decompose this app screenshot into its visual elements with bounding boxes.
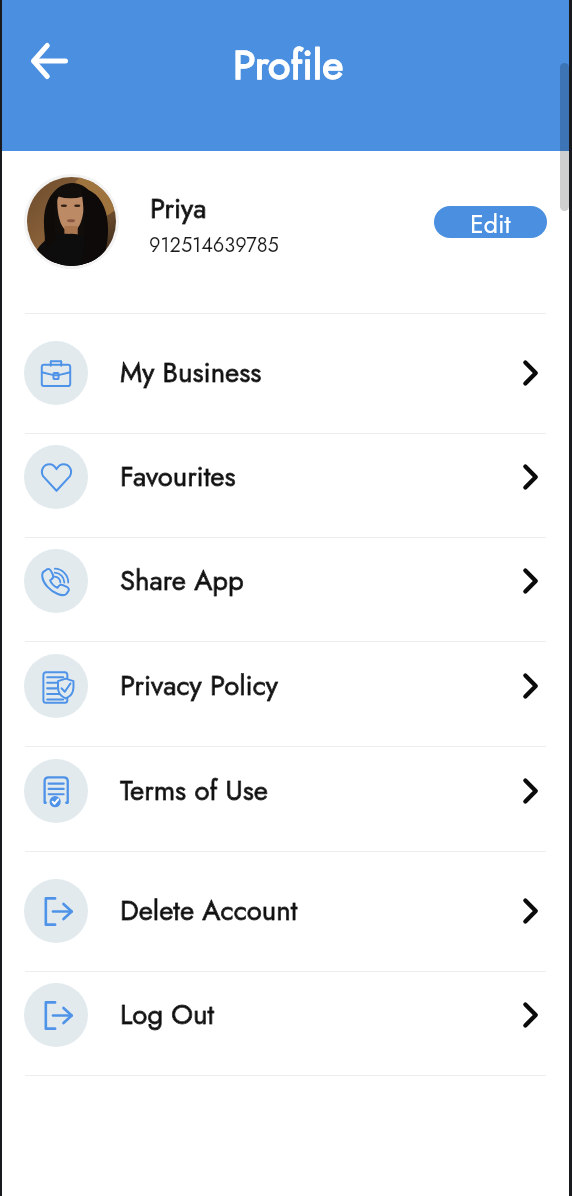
staticText: Log Out [120, 995, 215, 1035]
staticText: Privacy Policy [120, 666, 278, 706]
staticText: Favourites [120, 457, 236, 497]
staticText: Share App [120, 561, 244, 601]
staticText: My Business [120, 353, 262, 393]
button[interactable]: Terms of Use [0, 747, 572, 851]
staticText: Delete Account [120, 891, 298, 931]
button[interactable]: Favourites [0, 434, 572, 537]
staticText: Terms of Use [120, 771, 269, 811]
button[interactable]: Edit [434, 206, 547, 238]
button[interactable]: Share App [0, 538, 572, 641]
staticText: Profile [233, 35, 344, 94]
staticText: Log Out [120, 995, 215, 1035]
button[interactable]: Back [23, 35, 75, 87]
staticText: Edit [470, 206, 511, 238]
staticText: Profile [233, 35, 344, 94]
staticText: 912514639785 [149, 231, 279, 260]
staticText: Share App [120, 561, 244, 601]
button[interactable]: My Business [0, 314, 572, 433]
staticText: Delete Account [120, 891, 298, 931]
staticText: Priya [150, 189, 207, 229]
button[interactable]: Privacy Policy [0, 642, 572, 746]
staticText: Terms of Use [120, 771, 269, 811]
staticText: Priya [150, 189, 207, 229]
staticText: My Business [120, 353, 262, 393]
button[interactable]: Delete Account [0, 852, 572, 971]
staticText: Privacy Policy [120, 666, 278, 706]
staticText: Favourites [120, 457, 236, 497]
button[interactable]: Log Out [0, 972, 572, 1075]
